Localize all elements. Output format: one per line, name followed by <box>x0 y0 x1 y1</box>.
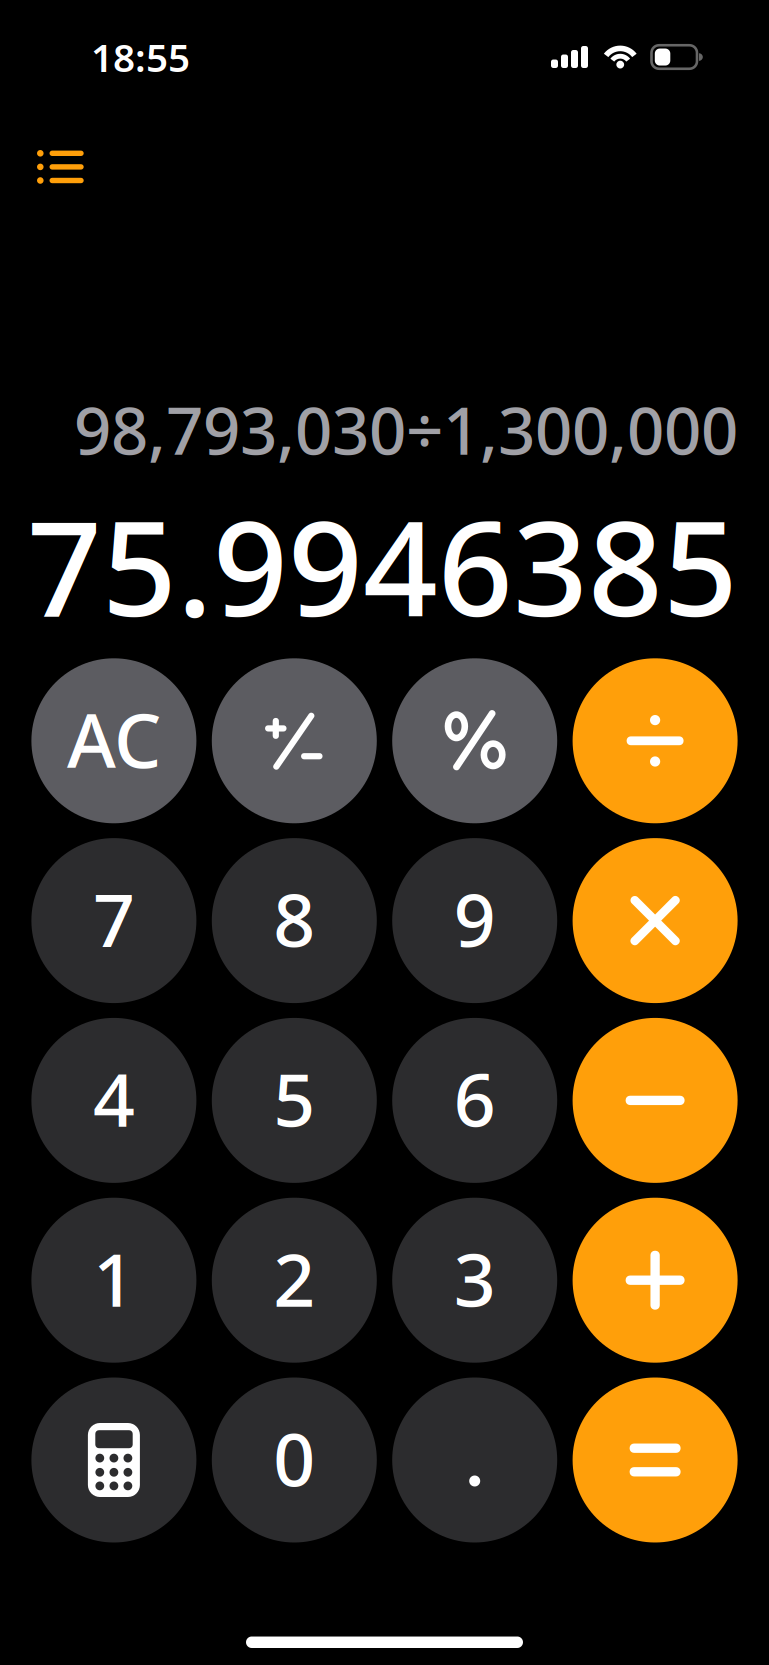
button[interactable]: AC <box>31 658 196 823</box>
staticText: 3 <box>454 1229 496 1327</box>
staticText: 1 <box>93 1229 135 1327</box>
button[interactable]: Divide <box>573 658 738 823</box>
button[interactable]: 0 <box>212 1377 377 1542</box>
button[interactable]: History <box>0 70 108 202</box>
button[interactable]: 2 <box>212 1198 377 1363</box>
button[interactable]: 5 <box>212 1018 377 1183</box>
staticText: 75.9946385 <box>27 479 738 652</box>
button[interactable]: Percent <box>392 658 557 823</box>
button[interactable]: 7 <box>31 838 196 1003</box>
button[interactable]: Plus Minus <box>212 658 377 823</box>
button[interactable]: 8 <box>212 838 377 1003</box>
button[interactable]: Minus <box>573 1018 738 1183</box>
button[interactable]: Decimal point <box>392 1377 557 1542</box>
staticText: 18:55 <box>91 31 190 83</box>
button[interactable]: Equals <box>573 1377 738 1542</box>
staticText: 98,793,030÷1,300,000 <box>74 386 738 473</box>
staticText: 8 <box>273 870 315 967</box>
button[interactable]: 1 <box>31 1198 196 1363</box>
button[interactable]: Plus <box>573 1198 738 1363</box>
staticText: 0 <box>273 1409 315 1507</box>
button[interactable]: 9 <box>392 838 557 1003</box>
staticText: 2 <box>273 1229 315 1327</box>
button[interactable]: Multiply <box>573 838 738 1003</box>
staticText: 4 <box>93 1050 135 1147</box>
button[interactable]: 3 <box>392 1198 557 1363</box>
button[interactable]: Calculator <box>31 1377 196 1542</box>
staticText: 6 <box>454 1050 496 1147</box>
staticText: 7 <box>93 870 135 967</box>
staticText: AC <box>67 689 161 788</box>
button[interactable]: 6 <box>392 1018 557 1183</box>
staticText: 5 <box>273 1050 315 1147</box>
staticText: 9 <box>454 870 496 967</box>
button[interactable]: 4 <box>31 1018 196 1183</box>
